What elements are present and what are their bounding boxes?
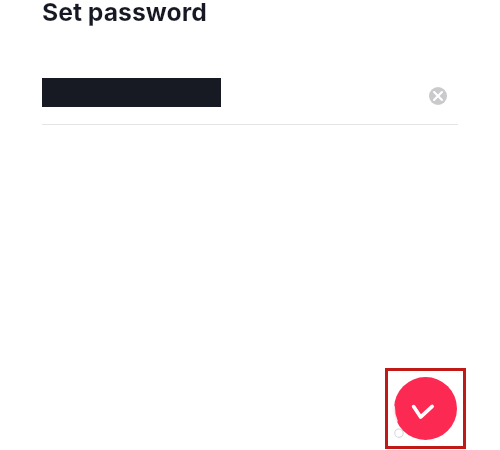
button[interactable]: Confirm password xyxy=(394,377,457,440)
button[interactable]: Clear password xyxy=(429,87,447,105)
staticText: Set password xyxy=(42,0,207,27)
